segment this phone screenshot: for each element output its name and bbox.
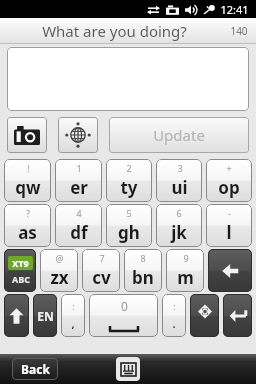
staticText: What are you doing? [42,21,187,41]
button[interactable]: - [206,204,252,247]
staticText: ! [27,162,30,174]
staticText: jk [171,221,187,244]
button[interactable]: 4 [55,204,102,247]
staticText: ty [120,176,138,199]
button[interactable]: + [206,159,252,202]
button[interactable]: @ [40,249,78,292]
staticText: @ [55,252,64,264]
button[interactable]: Enter [223,294,252,337]
staticText: qw [15,176,41,199]
staticText: - [228,207,231,219]
staticText: Back [21,361,50,377]
button[interactable]: Keyboard [116,357,140,381]
staticText: ? [26,207,30,219]
staticText: + [226,162,232,174]
staticText: zx [50,266,69,289]
button[interactable]: Shift [4,294,29,337]
staticText: ui [171,176,188,199]
button[interactable]: ? [4,204,51,247]
staticText: 6 [176,207,182,219]
button[interactable]: Backspace [208,249,252,292]
staticText: 9 [183,252,189,264]
button[interactable]: : [61,294,85,337]
staticText: 12:41 [220,2,249,17]
staticText: df [70,221,88,244]
staticText: m [177,266,194,289]
staticText: Update [153,125,205,145]
button[interactable]: 9 [166,249,204,292]
staticText: 2 [126,162,132,174]
staticText: . [172,316,176,331]
button[interactable]: XT9 ABC input mode [4,249,36,292]
staticText: EN [37,308,54,324]
button[interactable]: Update [109,117,249,153]
button[interactable]: Symbols 12# [190,294,219,337]
button[interactable]: 2 [106,159,152,202]
button[interactable]: Language [33,294,57,337]
staticText: cv [92,266,111,289]
staticText: bn [132,266,154,289]
staticText: l [226,221,232,244]
staticText: 7 [99,252,105,264]
button[interactable]: 5 [106,204,152,247]
staticText: er [70,176,88,199]
button[interactable]: 1 [55,159,102,202]
staticText: , [71,316,75,331]
staticText: : [72,300,75,312]
button[interactable]: ! [4,159,51,202]
staticText: 5 [126,207,132,219]
staticText: XT9 [12,257,29,269]
button[interactable]: 3 [156,159,202,202]
staticText: 1 [76,162,82,174]
button[interactable]: 7 [82,249,120,292]
button[interactable]: : [162,294,186,337]
button[interactable]: Space [89,294,158,337]
button[interactable]: Back [12,358,58,380]
staticText: as [18,221,37,244]
staticText: 140 [230,24,248,38]
button[interactable]: 6 [156,204,202,247]
staticText: 0 [121,298,128,314]
staticText: 8 [140,252,146,264]
button[interactable] [7,47,249,111]
staticText: : [173,300,176,312]
button[interactable]: 8 [124,249,162,292]
staticText: 4 [76,207,82,219]
button[interactable]: Add location [58,117,98,153]
button[interactable]: Attach photo [7,117,47,153]
staticText: gh [118,221,140,244]
staticText: 3 [177,162,183,174]
staticText: ABC [12,273,30,285]
staticText: op [218,176,240,199]
